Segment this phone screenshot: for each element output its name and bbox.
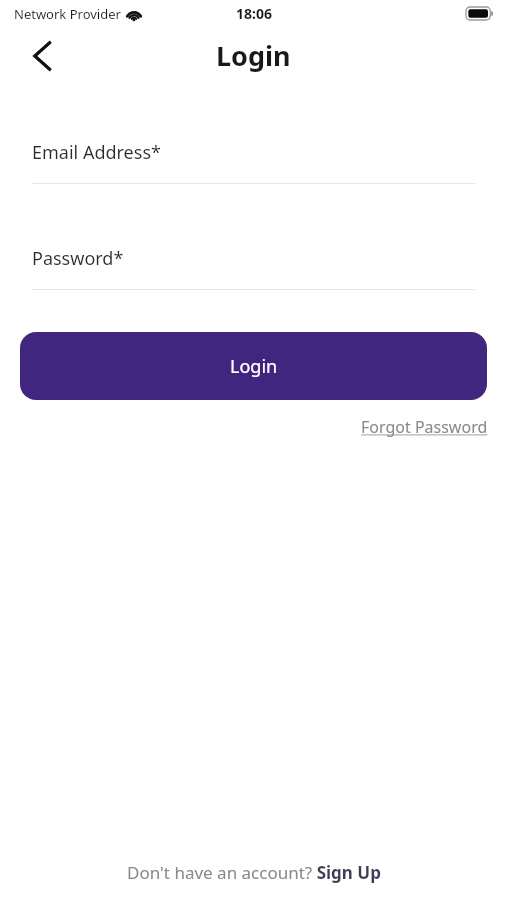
staticText: Login [216, 37, 291, 74]
button[interactable]: Back [18, 32, 66, 80]
button[interactable]: Don't have an account? Sign Up [115, 857, 393, 888]
staticText: 18:06 [236, 4, 272, 23]
button[interactable]: Password* [0, 246, 507, 290]
staticText: Don't have an account? Sign Up [127, 861, 381, 884]
button[interactable]: Email Address* [0, 140, 507, 184]
staticText: Email Address* [32, 140, 161, 165]
staticText: Forgot Password [361, 416, 488, 438]
button[interactable]: Forgot Password [361, 412, 488, 442]
staticText: Network Provider [14, 5, 121, 23]
staticText: Login [230, 354, 278, 379]
button[interactable]: Login [20, 332, 487, 400]
staticText: Password* [32, 246, 124, 271]
